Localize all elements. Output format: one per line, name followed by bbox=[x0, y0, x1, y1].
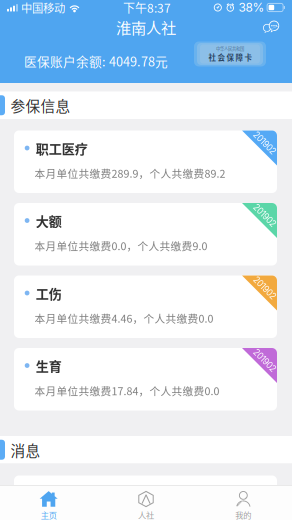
staticText: 本月单位共缴费289.9，个人共缴费89.2 bbox=[34, 165, 225, 181]
staticText: 大额 bbox=[36, 211, 62, 230]
button[interactable]: 我的 bbox=[195, 485, 292, 520]
staticText: 下午8:37 bbox=[123, 0, 171, 16]
staticText: 主页 bbox=[41, 509, 57, 520]
staticText: 我的 bbox=[235, 509, 251, 520]
staticText: 201902 bbox=[250, 138, 278, 148]
staticText: 本月单位共缴费4.46，个人共缴费0.0 bbox=[34, 310, 213, 326]
staticText: 职工医疗 bbox=[36, 139, 88, 157]
staticText: 社 会 保 障 卡 bbox=[208, 52, 251, 63]
button[interactable]: 生育 bbox=[14, 348, 277, 410]
button[interactable]: 主页 bbox=[0, 485, 97, 520]
staticText: 参保信息 bbox=[10, 95, 70, 116]
staticText: 201902 bbox=[250, 355, 278, 366]
staticText: 38% bbox=[239, 0, 265, 15]
staticText: 201902 bbox=[250, 283, 278, 293]
staticText: 本月单位共缴费0.0，个人共缴费9.0 bbox=[34, 238, 207, 253]
staticText: 人社 bbox=[138, 509, 154, 520]
staticText: 中华人民共和国 bbox=[216, 45, 244, 51]
staticText: 生育 bbox=[36, 356, 62, 375]
staticText: 中国移动 bbox=[21, 0, 65, 16]
button[interactable]: 职工医疗 bbox=[14, 130, 277, 193]
staticText: 淮南人社 bbox=[116, 16, 176, 38]
staticText: 消息 bbox=[10, 439, 40, 460]
button[interactable]: 消息 bbox=[256, 15, 286, 39]
staticText: 201902 bbox=[250, 210, 278, 221]
staticText: 医保账户余额: 4049.78元 bbox=[24, 52, 168, 70]
staticText: 工伤 bbox=[36, 284, 62, 302]
button[interactable]: 工伤 bbox=[14, 275, 277, 338]
button[interactable]: 人社 bbox=[97, 485, 195, 520]
staticText: 本月单位共缴费17.84，个人共缴费0.0 bbox=[34, 383, 219, 398]
button[interactable]: 大额 bbox=[14, 203, 277, 265]
